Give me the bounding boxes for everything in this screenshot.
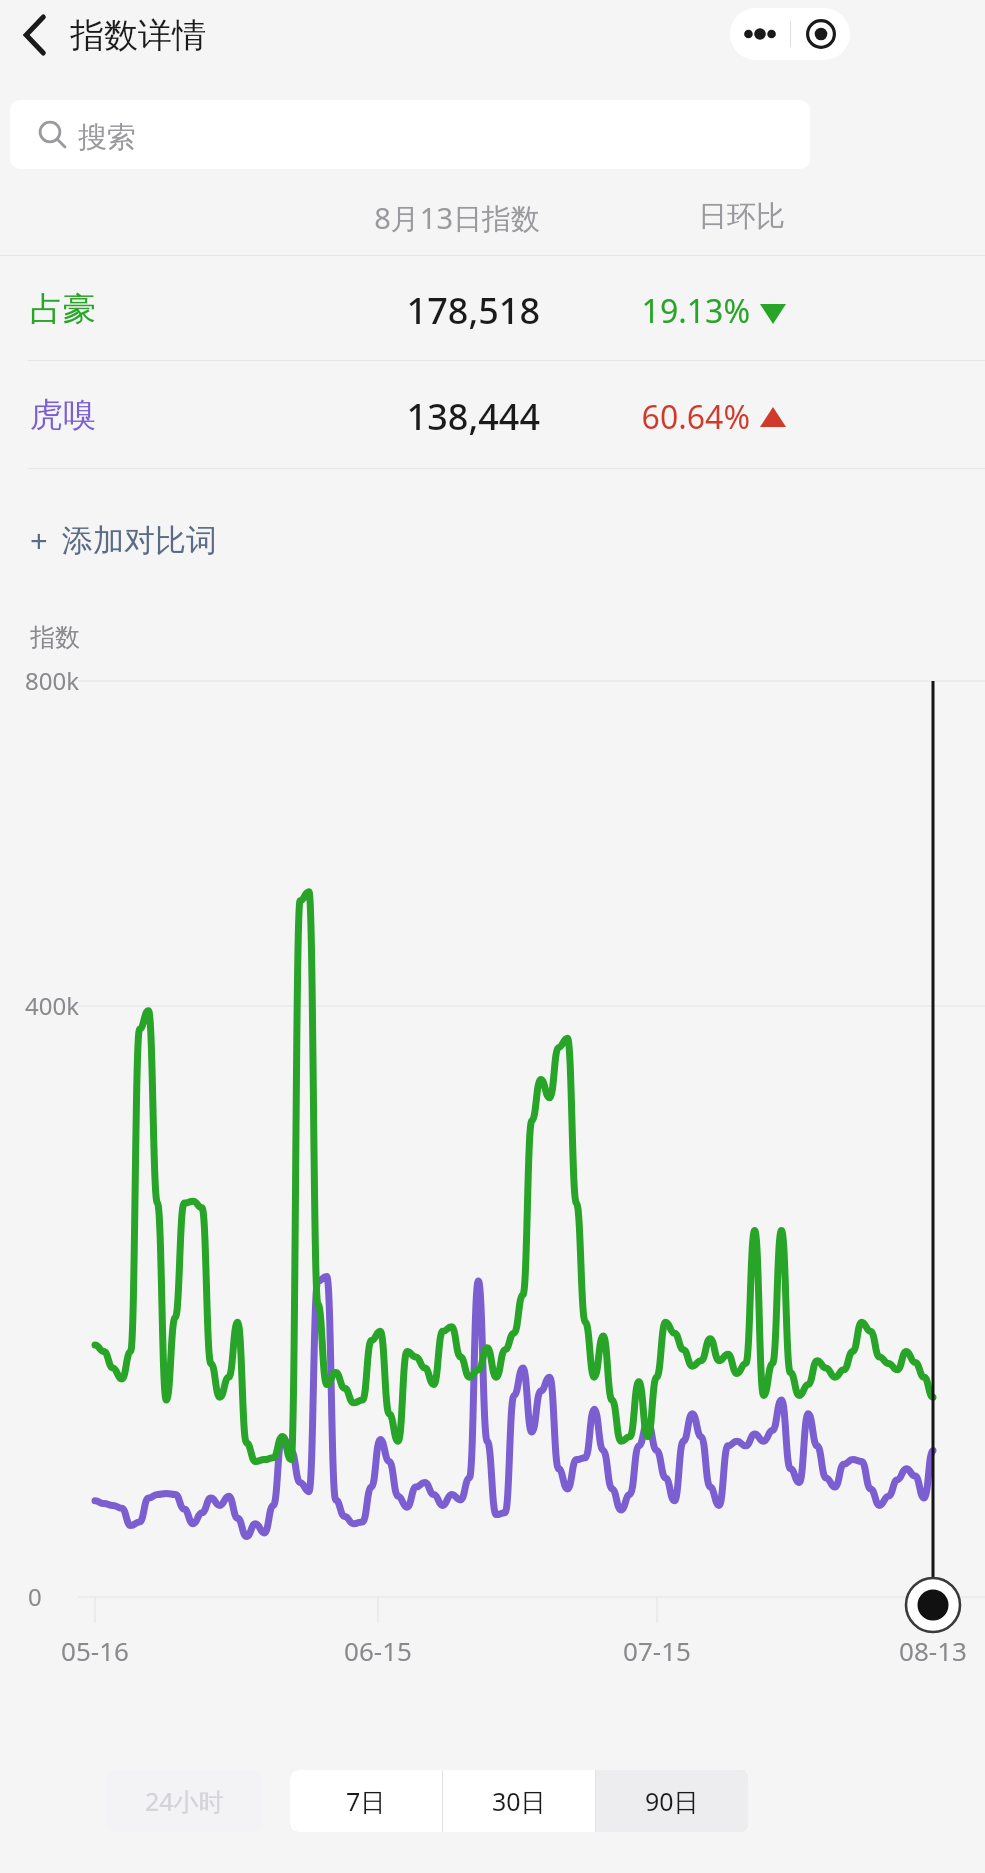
staticText: 19.13%: [560, 289, 750, 393]
staticText: 虎嗅: [30, 394, 96, 436]
staticText: 138,444: [300, 392, 540, 499]
button[interactable]: 90日: [596, 1770, 748, 1832]
staticText: 06-15: [318, 1633, 438, 1873]
button[interactable]: 搜索: [10, 100, 810, 169]
staticText: 24小时: [145, 1784, 224, 1818]
staticText: 60.64%: [560, 395, 750, 502]
staticText: 搜索: [78, 119, 136, 156]
staticText: 日环比: [600, 198, 785, 1873]
staticText: 指数: [30, 622, 80, 653]
staticText: 07-15: [597, 1633, 717, 1873]
button[interactable]: 虎嗅: [0, 361, 985, 468]
button[interactable]: 7日: [290, 1770, 442, 1832]
staticText: 90日: [645, 1784, 699, 1818]
button[interactable]: More: [730, 8, 790, 60]
button[interactable]: Target: [791, 8, 850, 60]
button[interactable]: 30日: [443, 1770, 595, 1832]
staticText: 178,518: [300, 286, 540, 390]
button[interactable]: Back: [6, 6, 64, 64]
staticText: 7日: [346, 1784, 386, 1818]
staticText: 08-13: [873, 1633, 985, 1873]
staticText: 05-16: [35, 1633, 155, 1873]
staticText: 占豪: [30, 288, 96, 330]
staticText: 添加对比词: [62, 521, 217, 560]
button[interactable]: +: [20, 500, 280, 580]
staticText: 800k: [25, 664, 79, 697]
staticText: 8月13日指数: [300, 198, 540, 1873]
staticText: 30日: [492, 1784, 546, 1818]
staticText: 0: [28, 1580, 42, 1613]
button[interactable]: 占豪: [0, 256, 985, 360]
staticText: +: [30, 519, 48, 561]
staticText: 指数详情: [70, 14, 206, 57]
staticText: 400k: [25, 989, 79, 1022]
button[interactable]: 24小时: [106, 1770, 262, 1832]
